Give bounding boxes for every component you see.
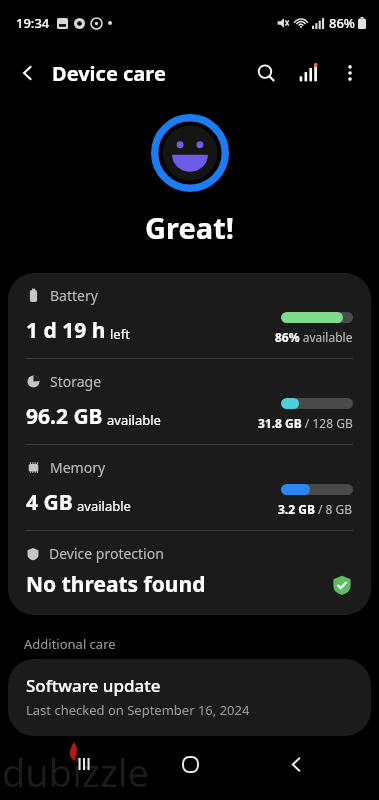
button[interactable]: Memory	[8, 445, 371, 530]
staticText: 1 d 19 h	[26, 316, 106, 345]
staticText: Memory	[50, 458, 106, 477]
staticText: available	[107, 411, 161, 429]
staticText: 3.2 GB / 8 GB	[278, 501, 353, 517]
button[interactable]: Software update	[8, 659, 371, 736]
button[interactable]: Back	[272, 740, 320, 788]
button[interactable]: Home	[166, 740, 214, 788]
button[interactable]: Device protection	[8, 531, 371, 615]
button[interactable]: Device care	[52, 60, 166, 87]
button[interactable]: Battery	[8, 273, 371, 358]
staticText: Great!	[145, 208, 234, 247]
button[interactable]: Recent apps	[59, 740, 107, 788]
staticText: Additional care	[24, 635, 116, 653]
staticText: 96.2 GB	[26, 402, 103, 431]
button[interactable]: Back	[6, 51, 50, 95]
button[interactable]: Storage	[8, 359, 371, 444]
staticText: 86% available	[275, 329, 353, 345]
button[interactable]: More options	[329, 52, 371, 94]
staticText: left	[110, 325, 130, 343]
staticText: 31.8 GB / 128 GB	[258, 415, 353, 431]
staticText: Software update	[26, 674, 161, 697]
staticText: 4 GB	[26, 488, 73, 517]
staticText: 86%	[329, 14, 355, 32]
staticText: Storage	[50, 372, 102, 391]
staticText: 19:34	[16, 14, 50, 32]
staticText: No threats found	[26, 570, 331, 599]
staticText: dubizzle	[2, 746, 149, 798]
button[interactable]: Usage statistics	[287, 52, 329, 94]
staticText: Device protection	[49, 544, 164, 563]
staticText: Last checked on September 16, 2024	[26, 701, 250, 719]
staticText: available	[77, 497, 131, 515]
button[interactable]: Search	[245, 52, 287, 94]
staticText: Battery	[50, 286, 98, 305]
